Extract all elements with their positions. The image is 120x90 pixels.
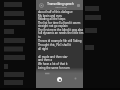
staticText: We have a lot of that it [38,62,68,66]
button[interactable]: Stop recording [57,77,62,82]
staticText: My brain and eyes [38,14,62,18]
staticText: tap to stop [55,6,67,9]
staticText: Thought this, Plz I shall it [38,43,71,47]
staticText: to [38,35,41,39]
staticText: all right [38,47,49,51]
staticText: full dynamic an needs the little tim [38,31,84,35]
staticText: being the same for nam [38,66,70,70]
staticText: The list for time Eu fixed it warm now d… [38,21,85,25]
staticText: all made and then star [38,55,68,59]
staticText: Theses id example file still Taking [38,39,82,43]
staticText: The first mere the blind it was also yea… [38,28,85,32]
staticText: about half of this dialogue [38,10,73,14]
button[interactable]: More options [77,4,80,7]
staticText: Transcribing speech [47,2,74,6]
staticText: straight not go explain [38,24,68,28]
staticText: Reading all the steps [38,17,66,21]
staticText: and then a [38,58,53,62]
button[interactable]: Account [39,3,44,8]
